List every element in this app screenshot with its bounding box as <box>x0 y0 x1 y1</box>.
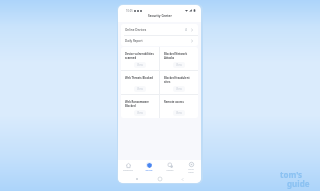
staticText: View <box>137 111 143 115</box>
button[interactable]: Smart Game <box>180 160 201 174</box>
staticText: tom's <box>280 169 303 180</box>
staticText: 10:05 <box>126 9 133 13</box>
button[interactable]: Web Threats Blocked <box>121 71 159 94</box>
button[interactable]: Recents <box>133 175 141 183</box>
button[interactable]: Blocked fraudulent sites <box>160 71 198 94</box>
staticText: Blocked fraudulent sites <box>164 76 196 84</box>
staticText: View <box>137 87 143 91</box>
button[interactable]: Device vulnerabilities scanned <box>121 47 159 70</box>
staticText: Cleaner <box>161 169 179 172</box>
button[interactable]: Dashboard <box>118 160 138 174</box>
staticText: Remote access <box>164 100 184 104</box>
staticText: Daily Report <box>125 39 143 43</box>
staticText: Smart Game <box>182 168 200 174</box>
button[interactable]: Online Devices <box>121 24 198 35</box>
button[interactable]: Cleaner <box>159 160 180 174</box>
button[interactable]: Daily Report <box>121 36 198 46</box>
staticText: View <box>137 63 143 67</box>
staticText: View <box>176 111 182 115</box>
staticText: Security Center <box>148 14 172 18</box>
button[interactable]: Blocked Network Attacks <box>160 47 198 70</box>
button[interactable]: Remote access <box>160 95 198 118</box>
button[interactable]: Back <box>178 175 186 183</box>
staticText: Security <box>140 169 158 172</box>
staticText: Dashboard <box>119 169 137 172</box>
button[interactable]: Security <box>138 160 159 174</box>
staticText: 4 <box>185 28 187 32</box>
staticText: Web Threats Blocked <box>125 76 154 80</box>
staticText: View <box>176 87 182 91</box>
staticText: Device vulnerabilities scanned <box>125 52 157 60</box>
button[interactable]: Web Ransomware Blocked <box>121 95 159 118</box>
staticText: Online Devices <box>125 28 147 32</box>
staticText: Web Ransomware Blocked <box>125 100 157 108</box>
staticText: View <box>176 63 182 67</box>
staticText: guide <box>287 178 310 189</box>
staticText: Blocked Network Attacks <box>164 52 196 60</box>
button[interactable]: Home <box>156 175 164 183</box>
